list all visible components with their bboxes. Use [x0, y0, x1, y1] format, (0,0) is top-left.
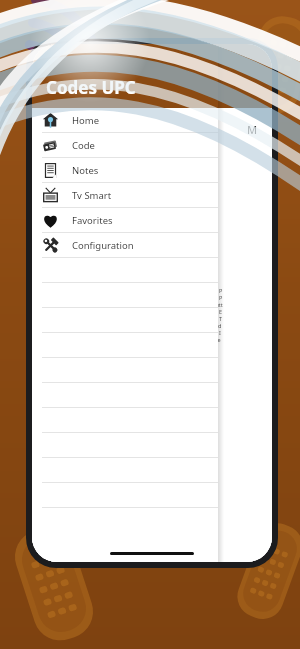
- staticText: Configuration: [72, 239, 134, 252]
- staticText: 3° E: [212, 308, 222, 315]
- staticText: Favorites: [72, 214, 113, 227]
- staticText: Notes: [72, 164, 99, 177]
- button[interactable]: Home: [32, 108, 218, 133]
- staticText: Codes UPC: [46, 76, 136, 99]
- staticText: M: [247, 122, 258, 137]
- staticText: 4:22: [46, 49, 62, 60]
- staticText: Tv Smart: [72, 189, 112, 202]
- button[interactable]: Notes: [32, 158, 218, 183]
- staticText: 4° T: [212, 315, 222, 322]
- staticText: butt: [212, 301, 223, 308]
- button[interactable]: Tv Smart: [32, 183, 218, 208]
- button[interactable]: Code: [32, 133, 218, 158]
- staticText: 2° P: [212, 294, 223, 301]
- staticText: Home: [72, 114, 100, 127]
- staticText: 5° I: [212, 329, 221, 336]
- staticText: cod: [212, 322, 222, 329]
- button[interactable]: Favorites: [32, 208, 218, 233]
- button[interactable]: Configuration: [32, 233, 218, 258]
- staticText: Code: [72, 139, 95, 152]
- staticText: the: [212, 336, 221, 343]
- staticText: 1° P: [212, 287, 223, 294]
